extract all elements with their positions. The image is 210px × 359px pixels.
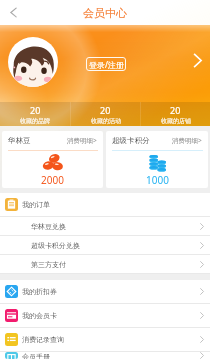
- button[interactable]: 华林豆兑换: [0, 217, 210, 236]
- button[interactable]: 华林豆: [2, 131, 103, 188]
- staticText: 2000: [41, 173, 64, 187]
- button[interactable]: Back: [0, 0, 26, 25]
- staticText: 登录/注册: [89, 59, 124, 70]
- staticText: 超级卡积分兑换: [31, 241, 80, 250]
- button[interactable]: Open profile: [186, 49, 208, 71]
- staticText: 收藏的活动: [91, 117, 121, 125]
- staticText: 第三方支付: [31, 260, 66, 269]
- button[interactable]: 超级卡积分: [106, 131, 208, 188]
- staticText: 会员手册: [22, 352, 50, 359]
- staticText: 华林豆兑换: [31, 222, 66, 231]
- staticText: 1000: [146, 173, 169, 187]
- button[interactable]: 20: [71, 102, 140, 126]
- button[interactable]: 20: [0, 102, 70, 126]
- staticText: 20: [100, 104, 111, 116]
- staticText: 消费明细>: [67, 136, 97, 145]
- staticText: 收藏的店铺: [161, 117, 191, 125]
- button[interactable]: 消费记录查询: [0, 328, 210, 352]
- staticText: 我的折扣券: [22, 287, 57, 296]
- button[interactable]: [8, 37, 58, 87]
- button[interactable]: 我的折扣券: [0, 280, 210, 304]
- button[interactable]: 我的会员卡: [0, 304, 210, 328]
- button[interactable]: 我的订单: [0, 193, 210, 217]
- button[interactable]: 登录/注册: [86, 57, 126, 71]
- button[interactable]: 20: [141, 102, 210, 126]
- staticText: 20: [170, 104, 181, 116]
- button[interactable]: 第三方支付: [0, 255, 210, 274]
- staticText: 超级卡积分: [112, 136, 150, 145]
- staticText: 我的会员卡: [22, 311, 57, 320]
- staticText: 我的订单: [22, 200, 50, 209]
- staticText: 会员中心: [83, 6, 127, 20]
- staticText: 20: [30, 104, 41, 116]
- button[interactable]: 会员手册: [0, 352, 210, 359]
- button[interactable]: 超级卡积分兑换: [0, 236, 210, 255]
- staticText: 消费记录查询: [22, 335, 64, 344]
- staticText: 收藏的品牌: [20, 117, 50, 125]
- staticText: 消费明细>: [172, 136, 202, 145]
- staticText: 华林豆: [8, 136, 31, 145]
